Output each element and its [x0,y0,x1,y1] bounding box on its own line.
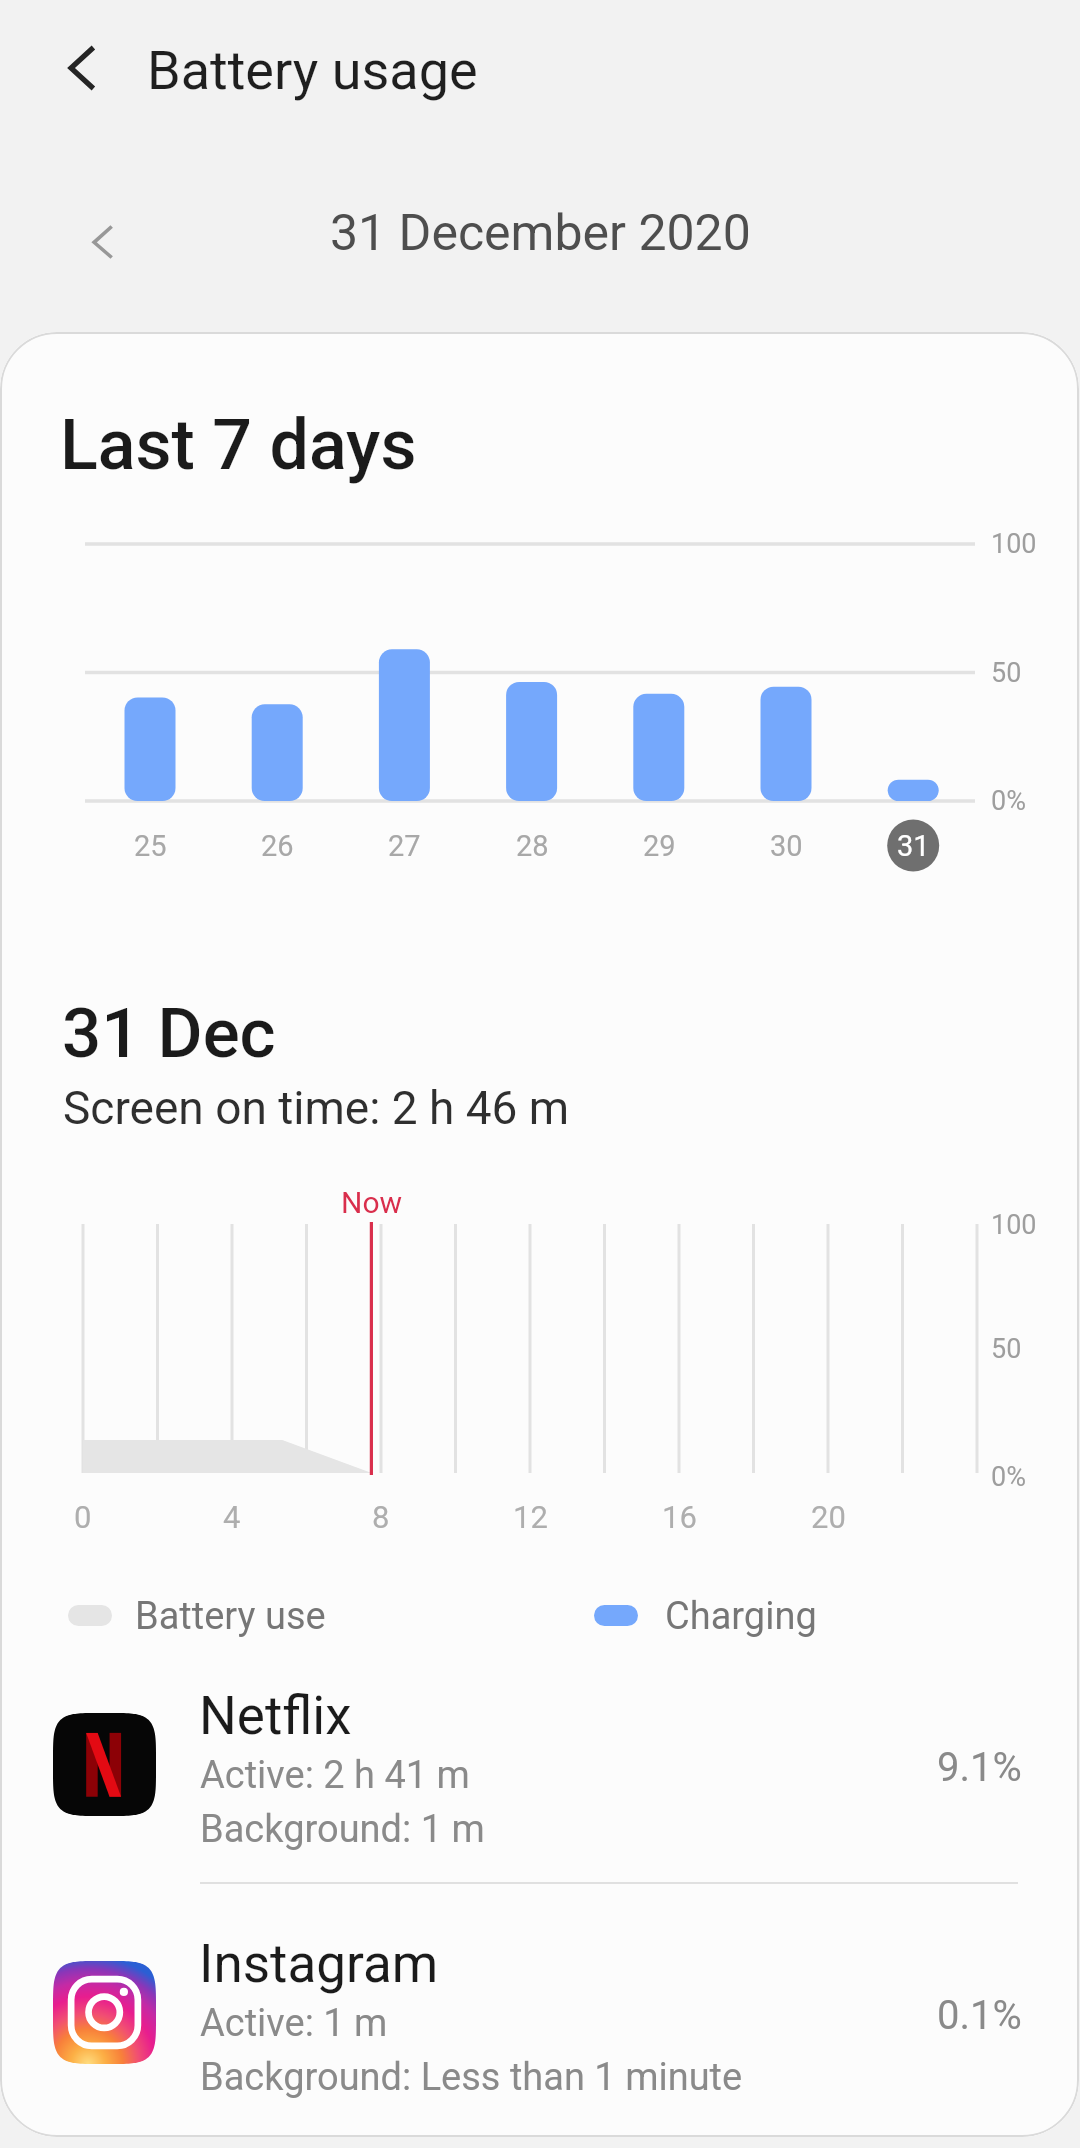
staticText: 0 [74,1499,92,1535]
staticText: 26 [261,829,294,863]
staticText: Background: 1 m [200,1807,485,1852]
staticText: Now [341,1185,403,1220]
staticText: 31 Dec [62,993,276,1074]
staticText: Battery use [135,1594,326,1639]
staticText: Active: 1 m [200,2001,388,2046]
staticText: 31 [897,829,930,863]
staticText: Active: 2 h 41 m [200,1753,470,1798]
staticText: 28 [516,829,549,863]
staticText: 50 [991,1333,1022,1365]
staticText: 20 [811,1499,846,1535]
staticText: 0.1% [937,1992,1022,2039]
staticText: Last 7 days [60,404,417,486]
button[interactable]: Netflix [4,1661,1079,1891]
staticText: Battery usage [147,39,478,102]
staticText: 100 [991,528,1037,560]
staticText: 27 [388,829,421,863]
button[interactable]: Previous day [68,199,138,269]
staticText: 31 December 2020 [330,204,751,263]
staticText: 30 [770,829,803,863]
staticText: 29 [643,829,676,863]
staticText: 50 [991,657,1022,689]
button[interactable]: Instagram [4,1909,1079,2137]
staticText: 4 [223,1499,241,1535]
button[interactable]: Navigate up [50,38,114,102]
staticText: Background: Less than 1 minute [200,2055,743,2100]
staticText: 100 [991,1209,1037,1241]
staticText: Netflix [199,1685,352,1747]
staticText: Screen on time: 2 h 46 m [63,1081,570,1135]
staticText: 16 [662,1499,697,1535]
staticText: 8 [372,1499,390,1535]
staticText: 9.1% [937,1744,1022,1791]
staticText: 25 [134,829,167,863]
staticText: 0% [991,785,1026,817]
staticText: Instagram [199,1933,439,1995]
staticText: 12 [513,1499,548,1535]
staticText: 0% [991,1461,1026,1493]
staticText: Charging [665,1594,817,1639]
